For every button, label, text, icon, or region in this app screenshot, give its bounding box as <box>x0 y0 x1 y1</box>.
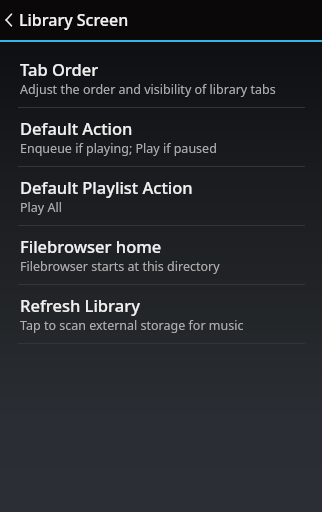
staticText: Library Screen <box>19 9 129 31</box>
button[interactable]: Tab Order <box>0 49 322 107</box>
staticText: Default Playlist Action <box>20 176 193 198</box>
button[interactable]: Navigate up, Library Screen <box>0 0 322 40</box>
staticText: Default Action <box>20 117 133 139</box>
staticText: Enqueue if playing; Play if paused <box>20 140 217 157</box>
button[interactable]: Refresh Library <box>0 285 322 343</box>
staticText: Filebrowser starts at this directory <box>20 258 220 275</box>
button[interactable]: Default Action <box>0 108 322 166</box>
staticText: Adjust the order and visibility of libra… <box>20 81 276 98</box>
button[interactable]: Filebrowser home <box>0 226 322 284</box>
button[interactable]: Default Playlist Action <box>0 167 322 225</box>
staticText: Play All <box>20 199 62 216</box>
staticText: Filebrowser home <box>20 235 162 257</box>
staticText: Refresh Library <box>20 294 140 316</box>
staticText: Tab Order <box>20 58 99 80</box>
staticText: Tap to scan external storage for music <box>20 317 244 334</box>
